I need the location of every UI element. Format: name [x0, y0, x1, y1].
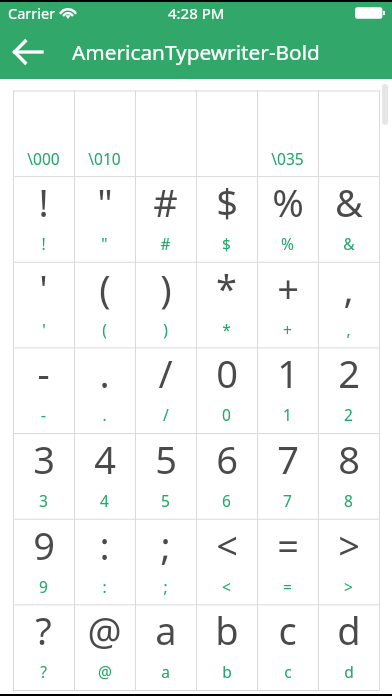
button[interactable] — [318, 91, 379, 177]
staticText: 9 — [33, 519, 55, 571]
staticText: * — [222, 319, 231, 340]
button[interactable]: 2 — [318, 347, 379, 433]
staticText: ; — [160, 519, 171, 571]
staticText: 5 — [161, 490, 170, 511]
button[interactable]: " — [74, 176, 135, 262]
staticText: 2 — [344, 404, 353, 425]
staticText: - — [37, 347, 50, 399]
button[interactable]: 3 — [13, 433, 74, 519]
staticText: + — [283, 319, 292, 340]
staticText: % — [281, 233, 294, 254]
staticText: b — [215, 604, 239, 656]
button[interactable]: $ — [196, 176, 257, 262]
button[interactable]: ( — [74, 262, 135, 348]
staticText: ! — [41, 233, 46, 254]
staticText: d — [337, 604, 361, 656]
staticText: @ — [87, 604, 122, 656]
staticText: < — [216, 519, 238, 571]
button[interactable]: \010 — [74, 91, 135, 177]
staticText: . — [102, 404, 107, 425]
button[interactable]: 1 — [257, 347, 318, 433]
button[interactable]: 4 — [74, 433, 135, 519]
staticText: @ — [98, 661, 112, 682]
button[interactable]: a — [135, 604, 196, 690]
staticText: 5 — [155, 433, 177, 485]
button[interactable]: b — [196, 604, 257, 690]
button[interactable]: 9 — [13, 519, 74, 605]
staticText: 3 — [33, 433, 55, 485]
button[interactable]: < — [196, 519, 257, 605]
button[interactable]: 5 — [135, 433, 196, 519]
staticText: 0 — [216, 347, 238, 399]
button[interactable]: ; — [135, 519, 196, 605]
button[interactable]: ? — [13, 604, 74, 690]
button[interactable]: ' — [13, 262, 74, 348]
staticText: ) — [163, 319, 168, 340]
staticText: ' — [42, 319, 46, 340]
staticText: a — [155, 604, 177, 656]
staticText: ! — [38, 176, 49, 228]
button[interactable]: = — [257, 519, 318, 605]
staticText: = — [283, 576, 292, 597]
button[interactable]: d — [318, 604, 379, 690]
staticText: * — [216, 262, 237, 314]
staticText: 4 — [100, 490, 109, 511]
staticText: / — [163, 404, 169, 425]
staticText: ( — [99, 262, 111, 314]
button[interactable]: & — [318, 176, 379, 262]
staticText: ? — [40, 661, 47, 682]
button[interactable]: : — [74, 519, 135, 605]
staticText: \035 — [271, 148, 304, 169]
staticText: - — [41, 404, 46, 425]
button[interactable]: Back — [0, 24, 54, 79]
button[interactable]: # — [135, 176, 196, 262]
button[interactable]: 8 — [318, 433, 379, 519]
staticText: AmericanTypewriter-Bold — [72, 38, 320, 66]
button[interactable]: / — [135, 347, 196, 433]
staticText: 4 — [94, 433, 116, 485]
staticText: ; — [163, 576, 168, 597]
staticText: ( — [102, 319, 107, 340]
button[interactable]: c — [257, 604, 318, 690]
staticText: ) — [160, 262, 172, 314]
staticText: ' — [39, 262, 48, 314]
staticText: < — [222, 576, 231, 597]
staticText: , — [346, 319, 351, 340]
button[interactable]: @ — [74, 604, 135, 690]
staticText: $ — [222, 233, 231, 254]
button[interactable]: > — [318, 519, 379, 605]
button[interactable]: 6 — [196, 433, 257, 519]
staticText: # — [153, 176, 178, 228]
button[interactable]: - — [13, 347, 74, 433]
button[interactable]: * — [196, 262, 257, 348]
button[interactable]: ! — [13, 176, 74, 262]
staticText: & — [343, 233, 355, 254]
button[interactable]: . — [74, 347, 135, 433]
staticText: a — [161, 661, 170, 682]
button[interactable]: % — [257, 176, 318, 262]
staticText: + — [277, 262, 299, 314]
staticText: \000 — [27, 148, 60, 169]
staticText: c — [284, 661, 292, 682]
staticText: Carrier — [8, 3, 56, 23]
staticText: & — [335, 176, 363, 228]
button[interactable] — [196, 91, 257, 177]
button[interactable]: \035 — [257, 91, 318, 177]
button[interactable]: 7 — [257, 433, 318, 519]
staticText: 7 — [283, 490, 292, 511]
button[interactable] — [135, 91, 196, 177]
button[interactable]: + — [257, 262, 318, 348]
button[interactable]: , — [318, 262, 379, 348]
staticText: d — [344, 661, 354, 682]
staticText: 6 — [216, 433, 238, 485]
button[interactable]: \000 — [13, 91, 74, 177]
staticText: % — [272, 176, 304, 228]
button[interactable]: ) — [135, 262, 196, 348]
staticText: # — [160, 233, 171, 254]
staticText: / — [158, 347, 173, 399]
button[interactable]: 0 — [196, 347, 257, 433]
staticText: > — [338, 519, 360, 571]
staticText: $ — [216, 176, 238, 228]
staticText: . — [99, 347, 110, 399]
staticText: b — [222, 661, 232, 682]
